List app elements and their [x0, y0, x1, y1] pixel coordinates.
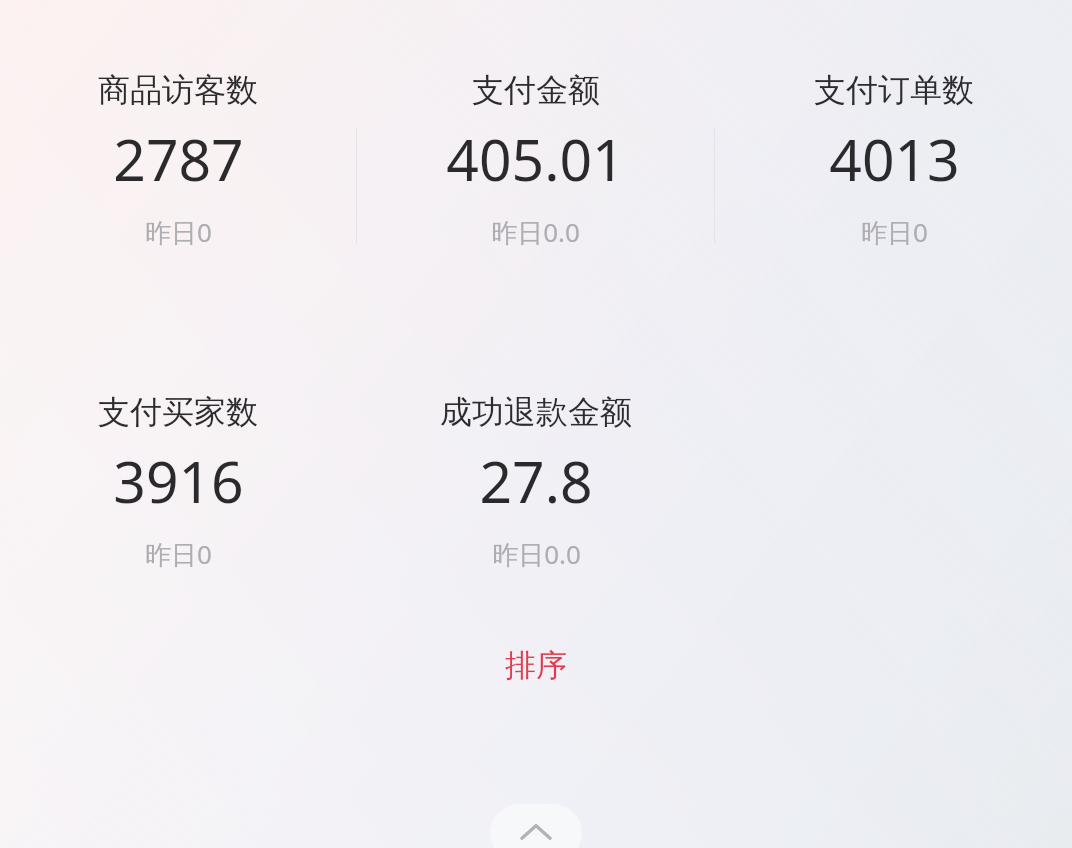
staticText: 排序 [505, 646, 567, 685]
button[interactable]: 排序 [485, 638, 587, 693]
button[interactable]: 支付金额 [446, 70, 625, 250]
staticText: 昨日0.0 [492, 536, 581, 572]
staticText: 昨日0 [145, 214, 212, 250]
staticText: 4013 [829, 120, 960, 198]
staticText: 昨日0 [145, 536, 212, 572]
staticText: 支付买家数 [98, 392, 258, 432]
staticText: 昨日0.0 [491, 214, 580, 250]
staticText: 支付订单数 [814, 70, 974, 110]
staticText: 支付金额 [472, 70, 600, 110]
button[interactable]: 商品访客数 [98, 70, 258, 250]
staticText: 27.8 [479, 442, 593, 520]
staticText: 3916 [113, 442, 244, 520]
button[interactable]: 支付订单数 [814, 70, 974, 250]
staticText: 405.01 [446, 120, 625, 198]
button[interactable]: Collapse [490, 804, 582, 848]
button[interactable]: 成功退款金额 [440, 392, 632, 572]
staticText: 成功退款金额 [440, 392, 632, 432]
staticText: 商品访客数 [98, 70, 258, 110]
staticText: 2787 [113, 120, 244, 198]
button[interactable]: 支付买家数 [98, 392, 258, 572]
staticText: 昨日0 [861, 214, 928, 250]
